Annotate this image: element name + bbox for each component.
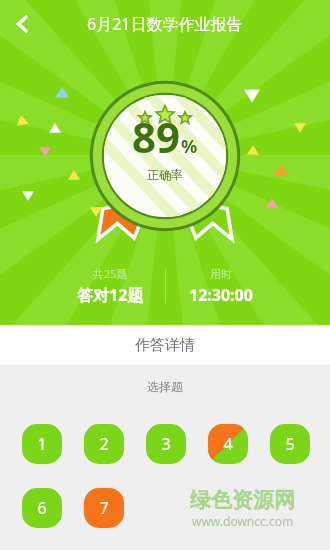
staticText: 选择题 xyxy=(147,379,183,394)
button[interactable]: 1 xyxy=(22,424,62,464)
staticText: 共25题 xyxy=(93,266,128,281)
staticText: 3 xyxy=(161,433,171,455)
staticText: 绿色资源网 xyxy=(190,487,295,513)
staticText: % xyxy=(181,134,198,159)
staticText: 5 xyxy=(285,433,295,455)
staticText: 6 xyxy=(37,497,47,519)
button[interactable]: 作答详情 xyxy=(0,325,330,365)
staticText: 6月21日数学作业报告 xyxy=(87,13,243,35)
staticText: 7 xyxy=(99,497,109,519)
staticText: www.downcc.com xyxy=(192,513,294,529)
button[interactable]: 5 xyxy=(270,424,310,464)
button[interactable]: 4 xyxy=(208,424,248,464)
button[interactable]: 3 xyxy=(146,424,186,464)
button[interactable]: 2 xyxy=(84,424,124,464)
staticText: 4 xyxy=(223,433,233,455)
staticText: 12:30:00 xyxy=(189,284,253,306)
staticText: 2 xyxy=(99,433,109,455)
staticText: 正确率 xyxy=(147,167,183,182)
staticText: 答对12题 xyxy=(77,284,144,306)
button[interactable]: Back xyxy=(0,2,44,46)
staticText: 作答详情 xyxy=(135,336,195,355)
staticText: 用时 xyxy=(210,267,232,281)
staticText: 89 xyxy=(132,108,181,165)
staticText: 1 xyxy=(37,433,47,455)
button[interactable]: 6 xyxy=(22,488,62,528)
button[interactable]: 7 xyxy=(84,488,124,528)
